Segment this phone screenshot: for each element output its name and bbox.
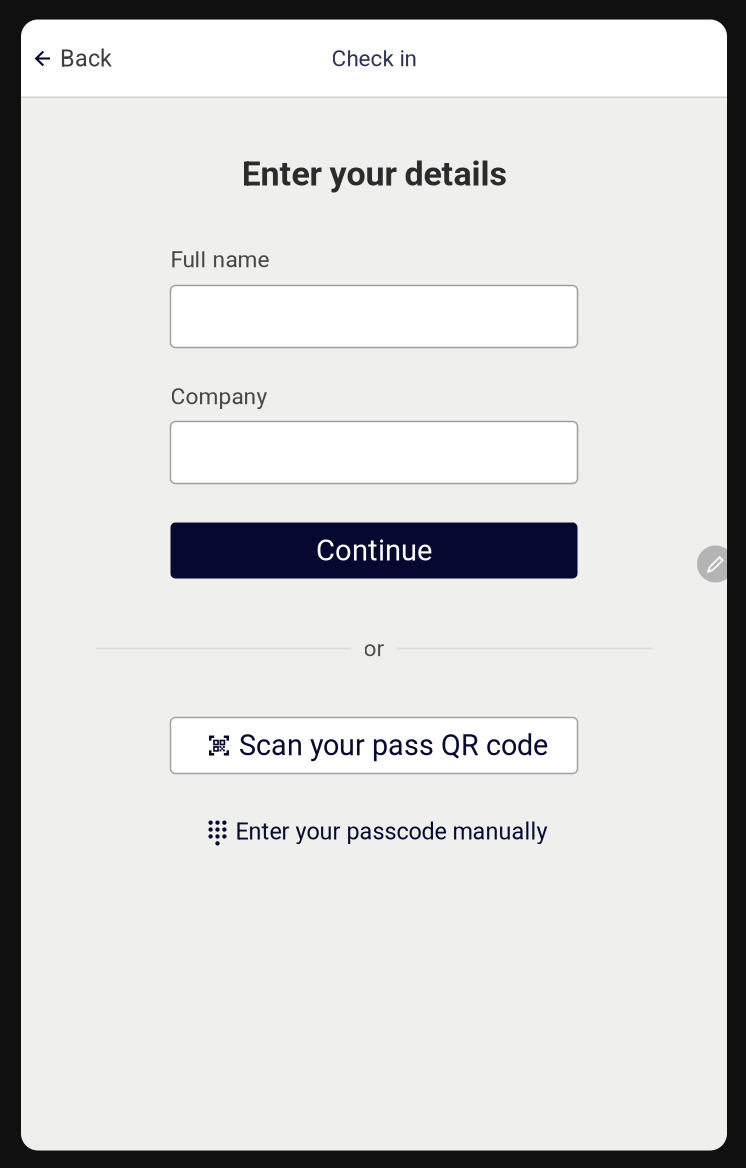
staticText: Enter your details (241, 154, 506, 194)
button[interactable]: Enter your passcode manually (190, 808, 557, 854)
staticText: Check in (331, 45, 416, 72)
staticText: Back (60, 45, 112, 72)
button[interactable]: Edit (697, 545, 734, 582)
staticText: or (363, 635, 384, 662)
button[interactable]: Scan your pass QR code (170, 717, 577, 773)
staticText: Full name (170, 246, 269, 273)
button[interactable] (170, 285, 577, 347)
staticText: Company (170, 383, 267, 410)
button[interactable]: Continue (170, 522, 577, 578)
staticText: Enter your passcode manually (235, 818, 547, 845)
button[interactable] (170, 421, 577, 483)
staticText: Scan your pass QR code (239, 729, 548, 762)
staticText: Continue (316, 533, 432, 568)
button[interactable]: Back (23, 33, 124, 84)
